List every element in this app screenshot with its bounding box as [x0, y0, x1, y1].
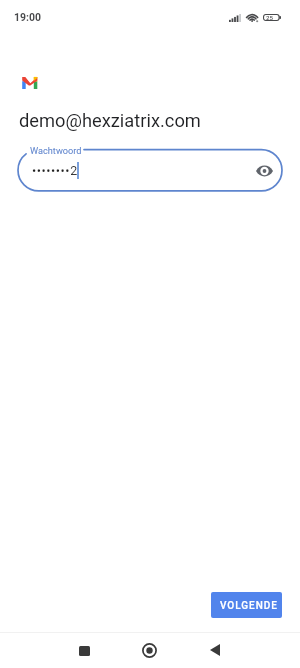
- button[interactable]: Show password: [254, 160, 275, 181]
- staticText: 25: [266, 14, 274, 21]
- button[interactable]: Recents: [70, 636, 99, 665]
- staticText: Wachtwoord: [30, 145, 82, 156]
- staticText: ••••••••2: [32, 163, 78, 178]
- button[interactable]: VOLGENDE: [211, 592, 282, 618]
- staticText: demo@hexziatrix.com: [19, 110, 201, 131]
- button[interactable]: Home: [135, 636, 164, 665]
- staticText: 19:00: [14, 11, 42, 23]
- staticText: VOLGENDE: [220, 600, 278, 612]
- button[interactable]: Back: [200, 635, 229, 664]
